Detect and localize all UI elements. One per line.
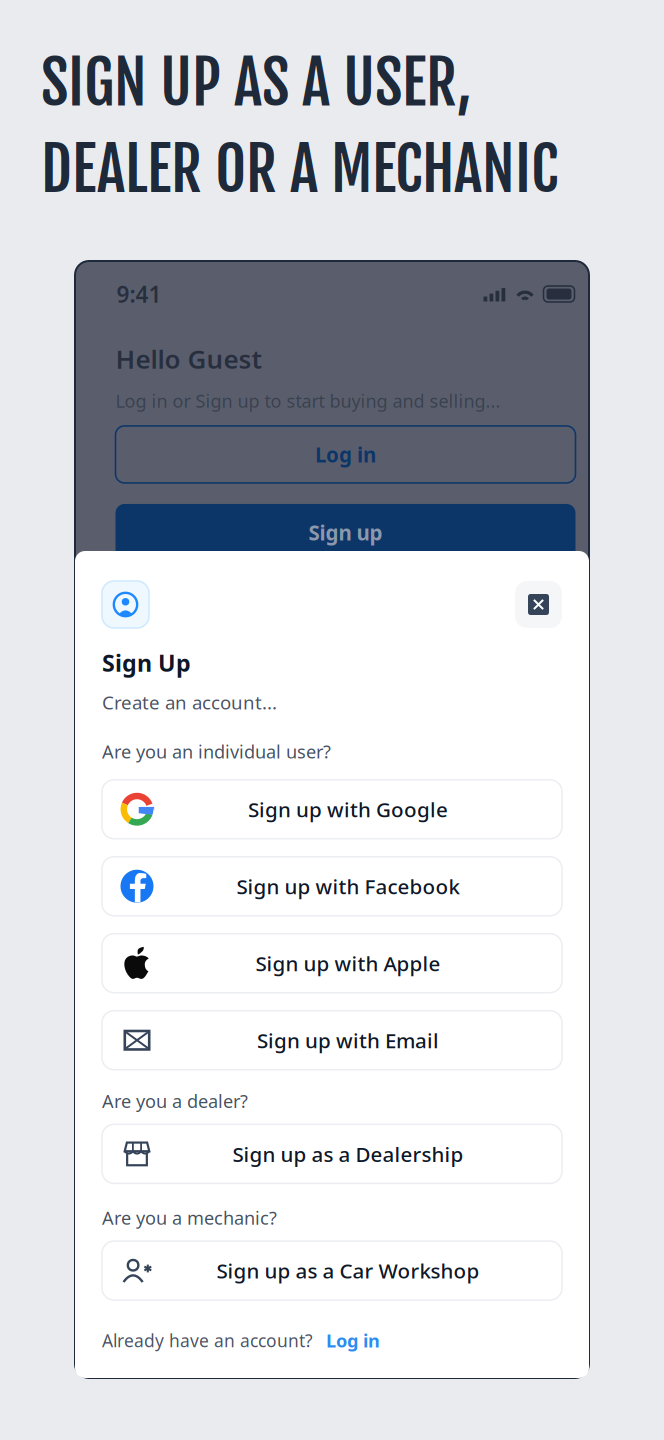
staticText: Sign up with Apple <box>255 949 440 977</box>
staticText: Are you a mechanic? <box>102 1205 277 1230</box>
button[interactable]: Close <box>515 581 562 628</box>
button[interactable]: Sign up with Google <box>102 780 562 839</box>
staticText: Are you a dealer? <box>102 1089 248 1113</box>
button[interactable]: Sign up with Apple <box>102 934 562 993</box>
staticText: Log in <box>326 1328 380 1353</box>
staticText: Sign up with Email <box>257 1026 439 1054</box>
staticText: SIGN UP AS A USER, <box>41 45 472 120</box>
button[interactable]: Sign up with Email <box>102 1011 562 1070</box>
staticText: Already have an account? <box>102 1329 313 1352</box>
button[interactable]: Log in <box>313 1328 380 1353</box>
staticText: 9:41 <box>116 279 161 309</box>
staticText: Hello Guest <box>115 341 262 376</box>
staticText: Create an account... <box>102 690 277 715</box>
staticText: Sign Up <box>102 647 191 679</box>
staticText: Sign up with Google <box>248 795 448 823</box>
staticText: Are you an individual user? <box>102 739 331 764</box>
staticText: Sign up as a Car Workshop <box>216 1257 479 1285</box>
button[interactable]: Sign up with Facebook <box>102 857 562 916</box>
staticText: Log in or Sign up to start buying and se… <box>115 388 500 413</box>
staticText: Sign up <box>308 518 382 546</box>
staticText: Sign up as a Dealership <box>232 1140 463 1168</box>
button[interactable]: Sign up as a Car Workshop <box>102 1241 562 1300</box>
staticText: DEALER OR A MECHANIC <box>41 131 558 207</box>
staticText: Sign up with Facebook <box>236 872 459 900</box>
button[interactable]: Sign up as a Dealership <box>102 1124 562 1183</box>
staticText: Log in <box>315 440 376 468</box>
